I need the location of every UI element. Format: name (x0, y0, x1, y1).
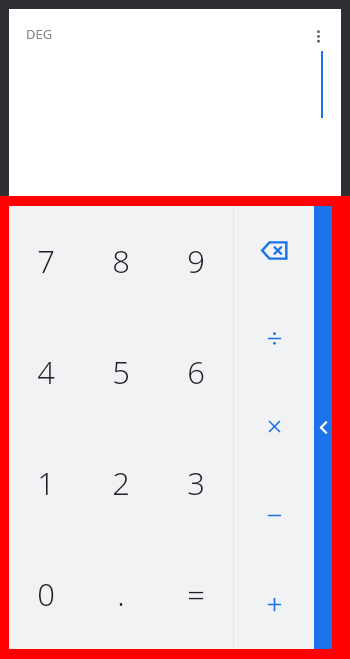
staticText: 6 (187, 351, 205, 393)
staticText: 9 (187, 240, 205, 282)
button[interactable]: Backspace (234, 206, 314, 294)
button[interactable]: Plus (234, 560, 314, 649)
button[interactable]: DEG (9, 9, 53, 43)
button[interactable]: 9 (158, 206, 233, 316)
button[interactable]: 1 (9, 427, 83, 538)
staticText: 7 (37, 240, 55, 282)
button[interactable]: 8 (83, 206, 158, 316)
button[interactable]: 4 (9, 316, 83, 427)
staticText: 5 (112, 351, 130, 393)
button[interactable]: 3 (158, 427, 233, 538)
button[interactable]: 2 (83, 427, 158, 538)
staticText: . (117, 573, 125, 615)
button[interactable]: More options (299, 17, 337, 55)
staticText: 3 (187, 462, 205, 504)
staticText: 2 (112, 462, 130, 504)
button[interactable]: . (83, 538, 158, 649)
staticText: 1 (37, 462, 55, 504)
staticText: 4 (37, 351, 55, 393)
staticText: = (187, 573, 205, 615)
button[interactable]: 7 (9, 206, 83, 316)
button[interactable]: Multiply (234, 382, 314, 471)
button[interactable]: 5 (83, 316, 158, 427)
staticText: 0 (37, 573, 55, 615)
button[interactable]: 6 (158, 316, 233, 427)
button[interactable]: Divide (234, 294, 314, 382)
staticText: 8 (112, 240, 130, 282)
button[interactable]: Expand panel (314, 206, 332, 649)
button[interactable]: = (158, 538, 233, 649)
button[interactable]: 0 (9, 538, 83, 649)
button[interactable]: Minus (234, 471, 314, 560)
